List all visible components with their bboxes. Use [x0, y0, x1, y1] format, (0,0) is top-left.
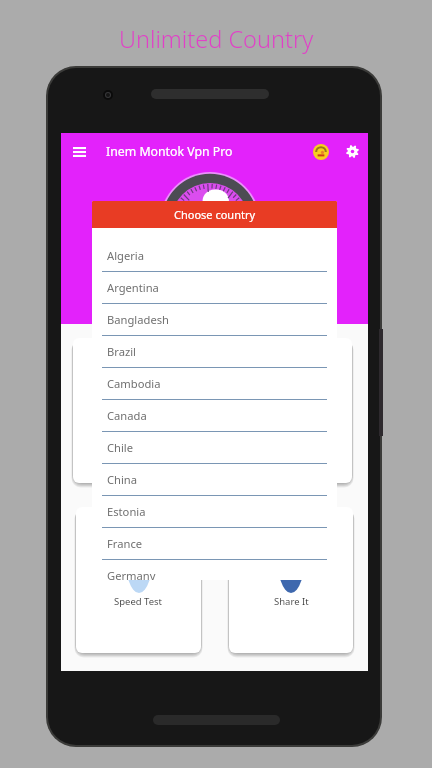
- staticText: Argentina: [107, 280, 159, 295]
- button[interactable]: Estonia: [92, 496, 337, 528]
- staticText: France: [107, 536, 143, 551]
- staticText: Algeria: [107, 248, 145, 263]
- button[interactable]: Speed Test: [76, 507, 201, 653]
- button[interactable]: Brazil: [92, 336, 337, 368]
- staticText: Germany: [107, 568, 156, 580]
- button[interactable]: Bangladesh: [92, 304, 337, 336]
- button[interactable]: Algeria: [92, 240, 337, 272]
- button[interactable]: Germany: [92, 560, 337, 580]
- staticText: Share It: [274, 595, 309, 608]
- staticText: Inem Montok Vpn Pro: [106, 143, 233, 160]
- button[interactable]: Open navigation menu: [65, 138, 93, 166]
- button[interactable]: Chile: [92, 432, 337, 464]
- button[interactable]: Share It: [229, 507, 353, 653]
- staticText: Bangladesh: [107, 312, 169, 327]
- staticText: Canada: [107, 408, 147, 423]
- button[interactable]: Argentina: [92, 272, 337, 304]
- staticText: Estonia: [107, 504, 146, 519]
- button[interactable]: France: [92, 528, 337, 560]
- staticText: Unlimited Country: [119, 23, 314, 55]
- staticText: Brazil: [107, 344, 136, 359]
- staticText: China: [107, 472, 138, 487]
- staticText: Choose country: [174, 207, 256, 222]
- staticText: Speed Test: [114, 595, 163, 608]
- button[interactable]: China: [92, 464, 337, 496]
- button[interactable]: Canada: [92, 400, 337, 432]
- button[interactable]: Premium account: [306, 137, 335, 166]
- staticText: Chile: [107, 440, 134, 455]
- staticText: Cambodia: [107, 376, 161, 391]
- button[interactable]: Cambodia: [92, 368, 337, 400]
- button[interactable]: Settings: [338, 137, 367, 166]
